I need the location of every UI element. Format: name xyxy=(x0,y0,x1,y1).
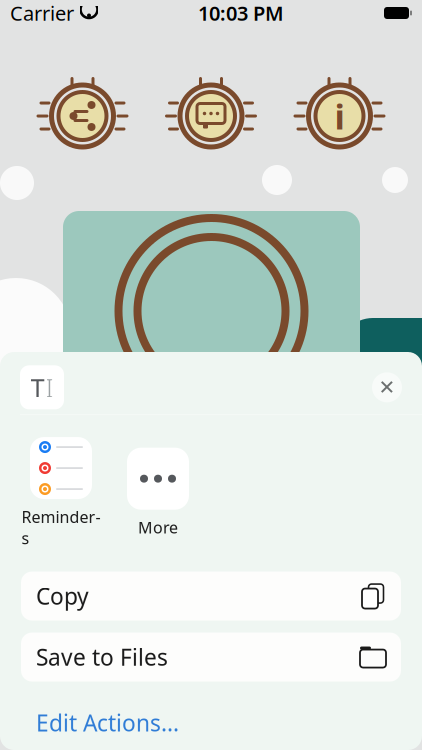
staticText: Carrier xyxy=(10,0,74,26)
staticText: Edit Actions... xyxy=(36,707,179,738)
staticText: 10:03 PM xyxy=(198,0,284,26)
staticText: T xyxy=(30,370,44,404)
button[interactable]: Save to Files xyxy=(21,632,401,681)
staticText: ✕ xyxy=(378,376,395,399)
staticText: Save to Files xyxy=(36,642,168,672)
staticText: More xyxy=(138,517,178,538)
staticText: i xyxy=(334,93,344,139)
staticText: I xyxy=(45,370,53,404)
button[interactable]: Close xyxy=(372,372,402,402)
button[interactable]: Edit Actions... xyxy=(36,699,179,746)
button[interactable]: Reminders xyxy=(21,437,101,549)
button[interactable]: More xyxy=(118,448,198,538)
staticText: Reminders xyxy=(21,506,100,549)
staticText: Copy xyxy=(36,581,89,611)
button[interactable]: Copy xyxy=(21,571,401,620)
